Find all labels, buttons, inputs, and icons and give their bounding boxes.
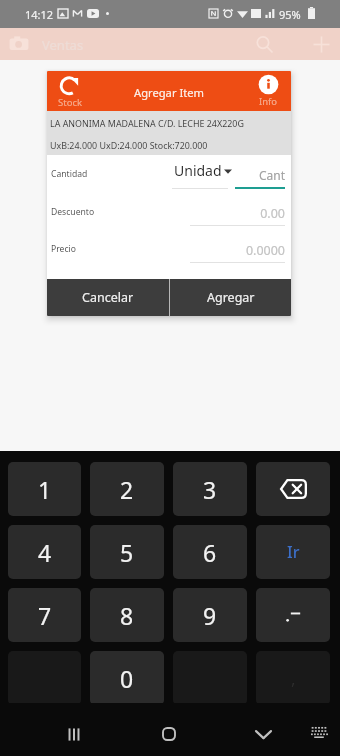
staticText: UxB:24.000 UxD:24.000 Stock:720.000 — [50, 139, 208, 151]
staticText: 95% — [279, 7, 301, 22]
staticText: 4 — [38, 537, 52, 568]
button[interactable]: 4 — [8, 525, 81, 579]
staticText: 5 — [120, 537, 134, 568]
button[interactable]: 3 — [173, 462, 247, 516]
button[interactable]: Backspace — [256, 462, 330, 516]
button[interactable]: Camera — [3, 28, 35, 60]
staticText: 9 — [203, 600, 217, 631]
button[interactable]: Stock — [47, 71, 93, 111]
staticText: 2 — [120, 474, 134, 505]
button[interactable]: Hide keyboard — [241, 712, 285, 756]
staticText: Agregar — [207, 289, 255, 306]
button[interactable]: 9 — [173, 588, 247, 642]
staticText: 1 — [38, 474, 52, 505]
staticText: , — [291, 667, 296, 690]
button[interactable]: Switch keyboard — [299, 712, 339, 752]
staticText: Stock — [58, 96, 83, 109]
button[interactable]: Agregar — [170, 279, 291, 316]
staticText: Ir — [287, 541, 300, 563]
button[interactable]: 0 — [90, 651, 164, 705]
button[interactable]: Add — [305, 28, 337, 60]
button[interactable]: Ir — [256, 525, 330, 579]
staticText: Cant — [232, 167, 285, 183]
staticText: Cantidad — [51, 168, 88, 180]
button[interactable]: Info — [245, 71, 291, 111]
staticText: 0 — [120, 663, 134, 694]
staticText: Cancelar — [82, 289, 134, 306]
staticText: LA ANONIMA MADALENA C/D. LECHE 24X220G — [50, 117, 244, 129]
staticText: 8 — [120, 600, 134, 631]
staticText: 3 — [203, 474, 217, 505]
button[interactable]: Home — [147, 712, 191, 756]
button[interactable]: 7 — [8, 588, 81, 642]
button[interactable]: Unidad — [174, 161, 232, 180]
staticText: Agregar Item — [134, 85, 205, 100]
staticText: 6 — [203, 537, 217, 568]
staticText: 7 — [38, 600, 52, 631]
other: Backspace — [279, 479, 307, 499]
staticText: 14:12 — [25, 7, 54, 22]
staticText: Info — [259, 95, 278, 108]
staticText: 0.00 — [235, 205, 285, 222]
staticText: 0.0000 — [235, 242, 285, 259]
button[interactable] — [256, 588, 330, 642]
staticText: Ventas — [42, 36, 84, 54]
staticText: Descuento — [51, 206, 95, 218]
button[interactable]: Recents — [52, 712, 96, 756]
button[interactable]: 5 — [90, 525, 164, 579]
button[interactable]: 1 — [8, 462, 81, 516]
button[interactable]: 6 — [173, 525, 247, 579]
button[interactable]: Search — [248, 28, 280, 60]
staticText: Precio — [51, 243, 76, 255]
staticText: Unidad — [174, 161, 222, 180]
button[interactable]: 8 — [90, 588, 164, 642]
button[interactable]: 2 — [90, 462, 164, 516]
button[interactable]: Cancelar — [47, 279, 169, 316]
